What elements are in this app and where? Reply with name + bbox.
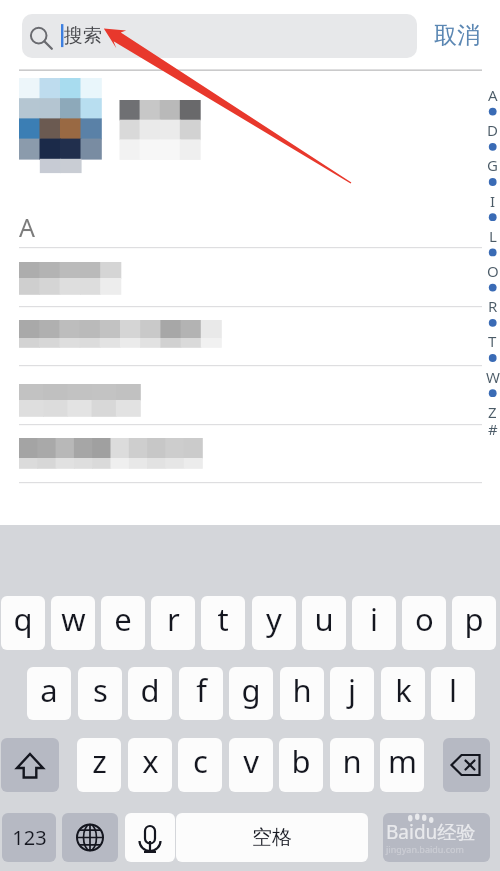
button[interactable]: j <box>330 667 374 720</box>
button[interactable]: o <box>402 596 446 650</box>
button[interactable]: h <box>280 667 324 720</box>
button[interactable]: 搜索 <box>22 14 417 58</box>
staticText: l <box>449 669 457 711</box>
staticText: A <box>488 85 498 103</box>
staticText: t <box>217 598 229 640</box>
staticText: R <box>488 296 498 314</box>
button[interactable]: r <box>151 596 195 650</box>
button[interactable]: A <box>484 85 500 103</box>
button[interactable]: # <box>484 419 500 437</box>
staticText: n <box>342 740 362 782</box>
staticText: D <box>487 120 498 138</box>
button[interactable]: 123 <box>2 813 56 862</box>
button[interactable]: R <box>484 296 500 314</box>
staticText: f <box>196 669 207 711</box>
staticText: h <box>292 669 312 711</box>
button[interactable]: 空格 <box>176 813 368 862</box>
button[interactable]: u <box>302 596 346 650</box>
button[interactable]: Shift <box>1 738 59 792</box>
staticText: L <box>489 226 497 244</box>
staticText: jingyan.baidu.com <box>386 843 464 855</box>
staticText: A <box>19 210 35 244</box>
button[interactable]: 取消 <box>424 13 490 57</box>
button[interactable]: b <box>279 738 323 792</box>
button[interactable]: x <box>128 738 172 792</box>
button[interactable]: k <box>381 667 425 720</box>
staticText: i <box>370 598 378 640</box>
button[interactable]: Backspace <box>443 738 490 792</box>
staticText: O <box>487 261 499 279</box>
button[interactable]: i <box>352 596 396 650</box>
staticText: 搜索 <box>64 24 102 48</box>
staticText: s <box>93 669 108 711</box>
button[interactable]: W <box>484 367 500 385</box>
staticText: k <box>395 669 412 711</box>
button[interactable]: L <box>484 226 500 244</box>
button[interactable]: Voice input <box>125 813 175 862</box>
button[interactable]: v <box>229 738 273 792</box>
button[interactable]: a <box>27 667 71 720</box>
staticText: 空格 <box>252 825 292 850</box>
button[interactable]: Z <box>484 402 500 420</box>
button[interactable]: f <box>179 667 223 720</box>
staticText: j <box>348 669 356 711</box>
staticText: p <box>464 598 484 640</box>
staticText: T <box>488 331 497 349</box>
staticText: Z <box>488 402 497 420</box>
button[interactable]: p <box>452 596 496 650</box>
staticText: 取消 <box>434 21 480 50</box>
button[interactable]: y <box>252 596 296 650</box>
button[interactable]: I <box>484 191 500 209</box>
staticText: v <box>243 740 259 782</box>
staticText: g <box>241 669 261 711</box>
staticText: G <box>487 155 498 173</box>
button[interactable]: t <box>201 596 245 650</box>
staticText: q <box>13 598 33 640</box>
button[interactable]: s <box>78 667 122 720</box>
staticText: Baidu经验 <box>386 819 476 845</box>
staticText: I <box>490 191 496 209</box>
button[interactable]: O <box>484 261 500 279</box>
staticText: o <box>415 598 434 640</box>
button[interactable]: z <box>77 738 121 792</box>
button[interactable]: d <box>128 667 172 720</box>
staticText: c <box>193 740 208 782</box>
button[interactable]: c <box>178 738 222 792</box>
staticText: e <box>114 598 132 640</box>
staticText: z <box>92 740 107 782</box>
staticText: r <box>167 598 180 640</box>
staticText: 123 <box>12 824 47 851</box>
staticText: b <box>291 740 311 782</box>
staticText: w <box>61 598 86 640</box>
button[interactable]: m <box>380 738 424 792</box>
button[interactable]: l <box>431 667 475 720</box>
button[interactable]: T <box>484 331 500 349</box>
staticText: y <box>266 598 282 640</box>
staticText: d <box>140 669 160 711</box>
button[interactable]: q <box>1 596 45 650</box>
staticText: a <box>40 669 58 711</box>
button[interactable]: e <box>101 596 145 650</box>
staticText: u <box>314 598 334 640</box>
button[interactable]: n <box>330 738 374 792</box>
button[interactable]: w <box>51 596 95 650</box>
button[interactable]: G <box>484 155 500 173</box>
staticText: m <box>388 740 417 782</box>
button[interactable]: D <box>484 120 500 138</box>
staticText: x <box>142 740 159 782</box>
staticText: W <box>486 367 500 385</box>
staticText: # <box>488 419 498 437</box>
button[interactable]: g <box>229 667 273 720</box>
button[interactable]: Switch keyboard <box>62 813 118 862</box>
button[interactable] <box>383 813 490 862</box>
